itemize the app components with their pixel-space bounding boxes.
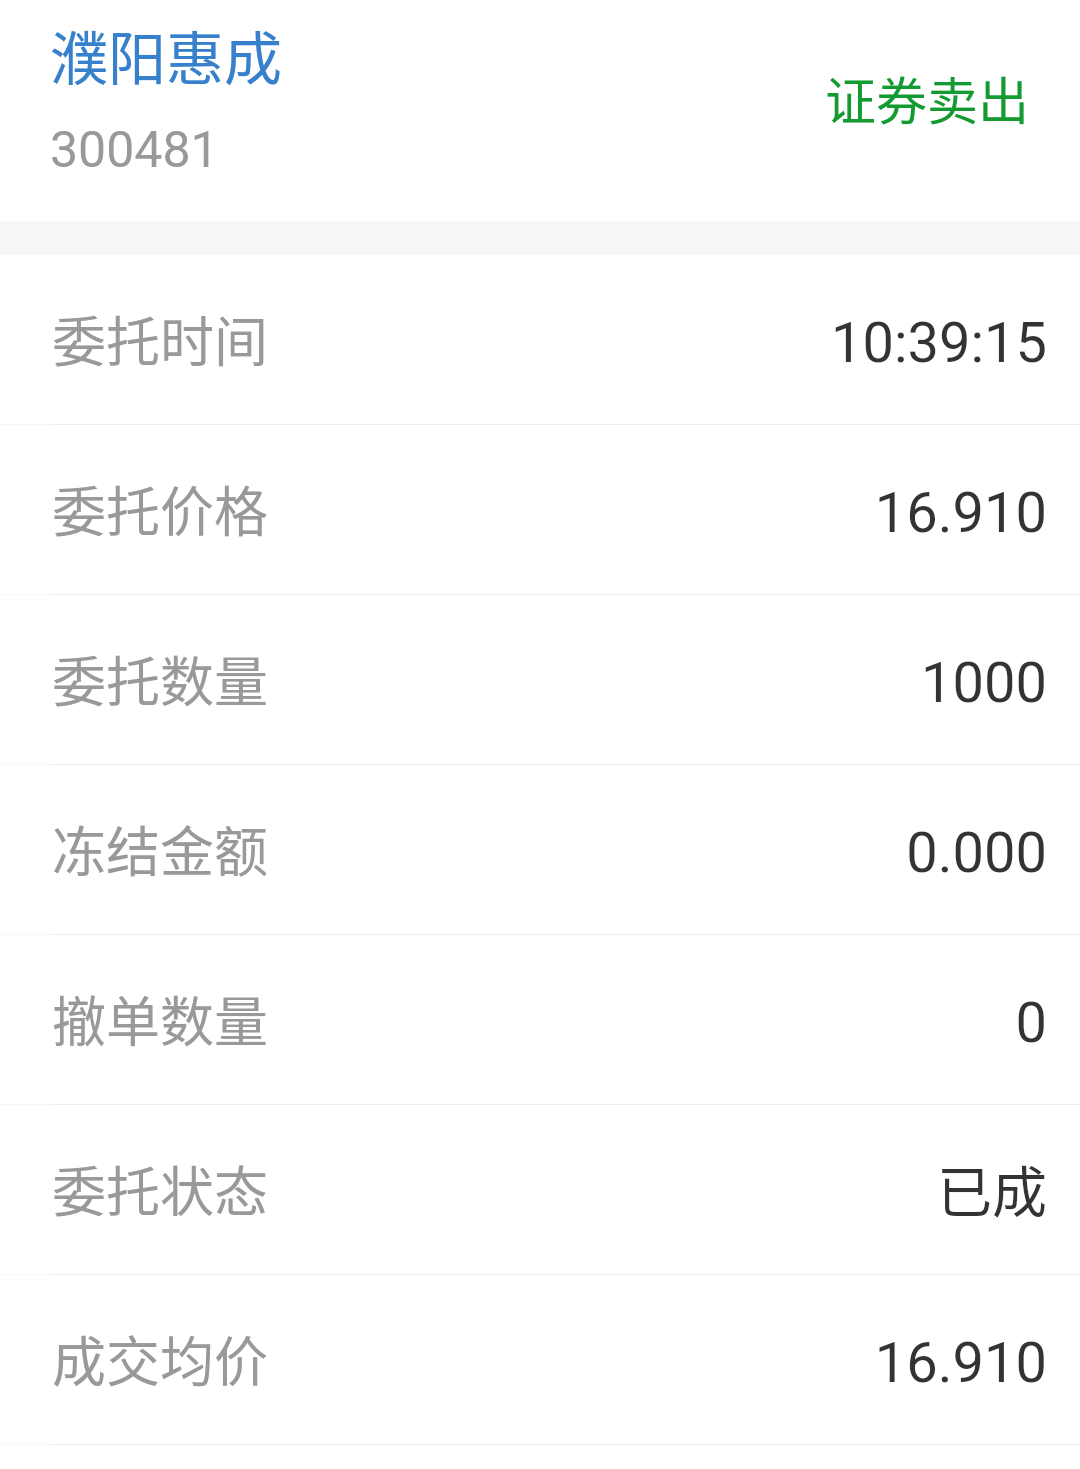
staticText: 委托时间 [52,299,268,377]
staticText: 委托数量 [52,639,268,717]
button[interactable]: 委托状态 [0,1105,1080,1274]
staticText: 0.000 [906,820,1047,886]
staticText: 0 [1015,990,1047,1056]
button[interactable]: 成交均价 [0,1275,1080,1444]
button[interactable]: 撤单数量 [0,935,1080,1104]
staticText: 濮阳惠成 [50,13,283,97]
button[interactable]: 委托数量 [0,595,1080,764]
staticText: 1000 [921,650,1047,716]
staticText: 已成 [936,1148,1047,1228]
staticText: 冻结金额 [52,809,268,887]
button[interactable]: 冻结金额 [0,765,1080,934]
staticText: 委托价格 [52,469,268,547]
staticText: 撤单数量 [52,979,268,1057]
staticText: 16.910 [874,1330,1047,1396]
staticText: 证券卖出 [825,61,1030,135]
button[interactable]: 委托时间 [0,255,1080,424]
button[interactable]: 委托价格 [0,425,1080,594]
staticText: 委托状态 [52,1149,268,1227]
staticText: 16.910 [874,480,1047,546]
staticText: 300481 [50,121,219,180]
button[interactable]: 濮阳惠成 [0,0,1080,221]
staticText: 成交均价 [52,1319,268,1397]
staticText: 10:39:15 [831,310,1047,376]
